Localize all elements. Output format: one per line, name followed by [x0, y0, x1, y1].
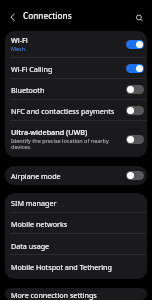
staticText: NFC and contactless payments — [11, 106, 115, 116]
button[interactable]: Turn on — [126, 85, 144, 94]
staticText: Identify the precise location of nearby — [11, 137, 109, 144]
staticText: SIM manager — [11, 198, 57, 208]
button[interactable]: Bluetooth — [5, 79, 147, 100]
staticText: Mobile networks — [11, 219, 68, 229]
button[interactable]: Search — [130, 6, 150, 26]
button[interactable]: SIM manager — [5, 193, 147, 213]
button[interactable]: Mobile networks — [5, 213, 147, 234]
button[interactable]: Turn off — [126, 40, 144, 49]
staticText: Mesh — [11, 45, 26, 52]
staticText: Ultra-wideband (UWB) — [11, 127, 88, 137]
button[interactable]: Wi-Fi Calling — [5, 58, 147, 79]
staticText: Data usage — [11, 241, 50, 251]
staticText: Bluetooth — [11, 85, 45, 95]
button[interactable]: Navigate up — [3, 6, 22, 25]
button[interactable]: NFC and contactless payments — [5, 100, 147, 121]
button[interactable]: Ultra-wideband (UWB) — [5, 121, 147, 157]
staticText: More connection settings — [11, 290, 97, 300]
button[interactable]: Mobile Hotspot and Tethering — [5, 255, 147, 279]
button[interactable]: Turn on — [126, 135, 144, 144]
button[interactable]: More connection settings — [5, 288, 147, 300]
staticText: devices. — [11, 143, 32, 150]
button[interactable]: Data usage — [5, 234, 147, 255]
staticText: Wi-Fi Calling — [11, 64, 53, 74]
button[interactable]: Turn off — [126, 64, 144, 73]
button[interactable]: Airplane mode — [5, 166, 147, 185]
button[interactable]: Turn on — [126, 106, 144, 115]
button[interactable]: Turn on — [126, 171, 144, 180]
staticText: Wi-Fi — [11, 35, 28, 45]
staticText: Connections — [23, 10, 72, 21]
staticText: Mobile Hotspot and Tethering — [11, 262, 112, 272]
button[interactable]: Wi-Fi — [5, 31, 147, 58]
staticText: Airplane mode — [11, 171, 61, 181]
